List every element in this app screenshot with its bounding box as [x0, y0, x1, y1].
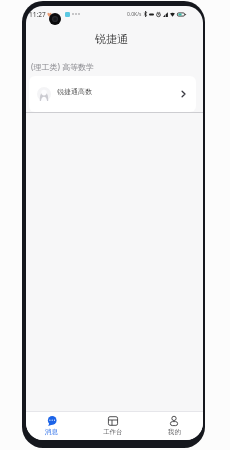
staticText: 锐捷通高数: [57, 87, 92, 96]
button[interactable]: Workbench: [77, 416, 149, 436]
staticText: 消息: [45, 428, 58, 436]
button[interactable]: Messages: [26, 416, 77, 436]
button[interactable]: 锐捷通高数: [29, 76, 196, 112]
staticText: 我的: [168, 428, 181, 436]
staticText: 11:27: [29, 10, 46, 19]
staticText: 0.0K/s: [127, 11, 142, 18]
staticText: 工作台: [103, 428, 123, 436]
staticText: (理工类) 高等数学: [31, 61, 94, 72]
staticText: 锐捷通: [95, 32, 128, 46]
button[interactable]: Profile: [149, 416, 199, 436]
